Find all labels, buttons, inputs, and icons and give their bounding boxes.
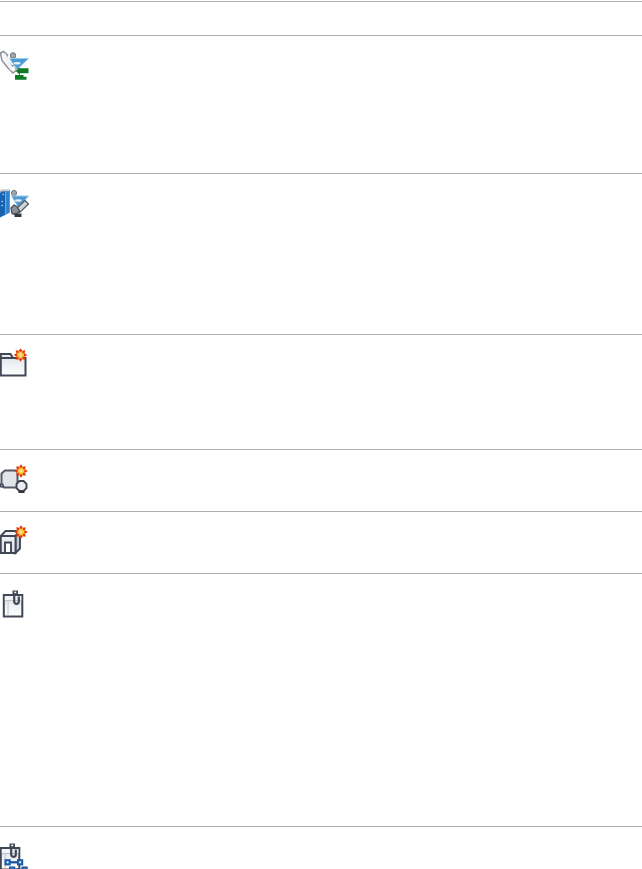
button[interactable]: New package	[0, 526, 29, 555]
button[interactable]: Clipboard	[0, 589, 29, 618]
button[interactable]: Clipboard network	[0, 842, 26, 869]
button[interactable]: Call sync	[0, 51, 29, 80]
button[interactable]: New tag	[0, 465, 29, 494]
button[interactable]: Server filter	[0, 189, 29, 218]
button[interactable]: New folder	[0, 349, 29, 378]
